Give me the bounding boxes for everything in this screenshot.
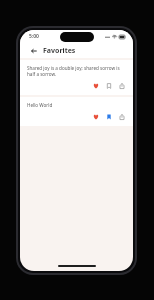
button[interactable]: Shared joy is a double joy; shared sorro… — [20, 60, 133, 95]
button[interactable]: Share — [117, 81, 126, 90]
staticText: Hello World — [27, 102, 53, 108]
staticText: 5:00 — [29, 33, 39, 40]
staticText: Favorites — [43, 46, 76, 56]
button[interactable]: Back — [28, 45, 39, 56]
button[interactable]: Favorite — [91, 81, 100, 90]
button[interactable]: Favorite — [91, 112, 100, 121]
button[interactable]: Hello World — [20, 97, 133, 126]
button[interactable]: Share — [117, 112, 126, 121]
staticText: Shared joy is a double joy; shared sorro… — [27, 65, 126, 77]
button[interactable]: Bookmark — [104, 81, 113, 90]
button[interactable]: Bookmark — [104, 112, 113, 121]
